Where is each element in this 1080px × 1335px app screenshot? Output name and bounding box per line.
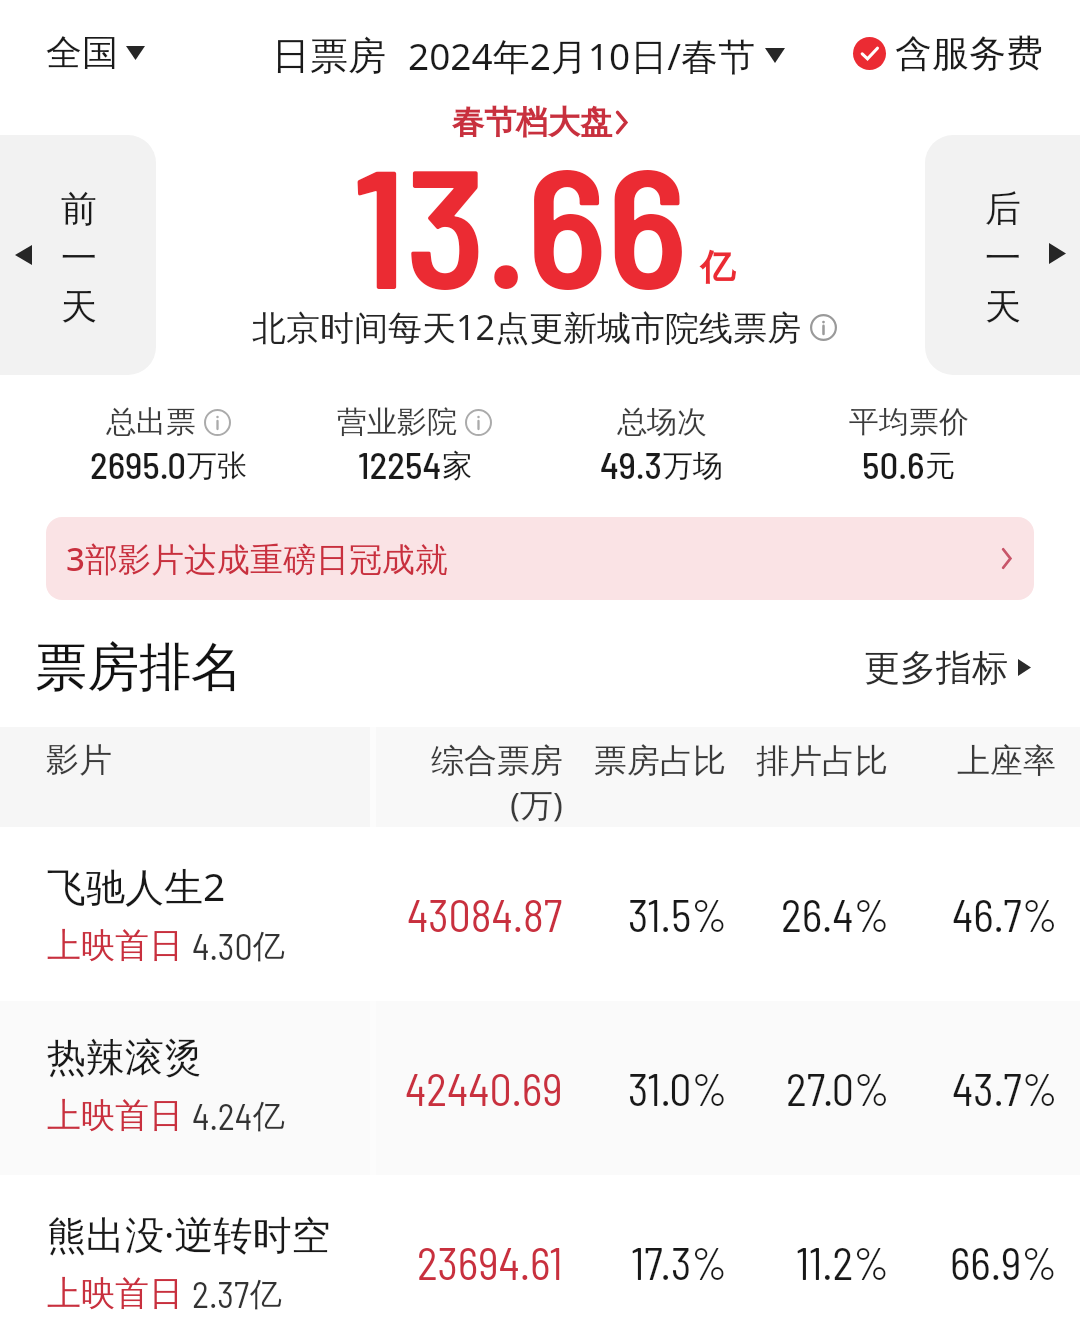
staticText: 4.24	[192, 1094, 253, 1137]
button[interactable]: 3部影片达成重磅日冠成就	[46, 517, 1034, 600]
staticText: 43084.87	[407, 888, 563, 941]
staticText: 42440.69	[405, 1062, 563, 1115]
other: Next day	[1049, 243, 1066, 264]
staticText: 13.66	[353, 121, 688, 323]
button[interactable]: 含服务费	[853, 30, 1043, 77]
staticText: 66.9%	[950, 1236, 1058, 1289]
staticText: (万)	[510, 782, 563, 827]
staticText: 上映首日	[47, 1272, 183, 1315]
button[interactable]	[925, 135, 1080, 375]
staticText: 北京时间每天12点更新城市院线票房	[252, 304, 801, 350]
staticText: 前	[61, 186, 97, 231]
staticText: 一	[985, 235, 1021, 280]
staticText: 飞驰人生2	[47, 859, 226, 912]
staticText: 31.0%	[628, 1062, 728, 1115]
staticText: 43.7%	[952, 1062, 1058, 1115]
staticText: 12254	[358, 442, 442, 486]
staticText: 热辣滚烫	[47, 1033, 203, 1082]
staticText: 46.7%	[952, 888, 1058, 941]
staticText: 日票房	[272, 32, 386, 80]
button[interactable]: 春节档大盘	[452, 102, 629, 142]
staticText: 上座率	[957, 740, 1056, 782]
staticText: 营业影院	[337, 403, 457, 441]
staticText: 春节档大盘	[452, 102, 612, 142]
staticText: 总场次	[617, 403, 707, 441]
staticText: 万张	[187, 447, 247, 485]
staticText: 家	[442, 447, 472, 485]
staticText: 3部影片达成重磅日冠成就	[66, 536, 448, 581]
staticText: 一	[61, 235, 97, 280]
staticText: 平均票价	[849, 403, 969, 441]
staticText: 4.30	[192, 924, 253, 967]
staticText: 元	[925, 447, 955, 485]
button[interactable]: 熊出没·逆转时空	[0, 1175, 1080, 1335]
staticText: 49.3	[600, 442, 663, 486]
staticText: 50.6	[862, 442, 925, 486]
button[interactable]: 日票房	[272, 30, 785, 81]
staticText: 含服务费	[895, 30, 1043, 77]
button[interactable]: 全国	[46, 30, 145, 75]
staticText: 亿	[253, 926, 285, 966]
staticText: 票房占比	[594, 740, 726, 782]
button[interactable]: 热辣滚烫	[0, 1001, 1080, 1175]
staticText: 熊出没·逆转时空	[47, 1207, 331, 1260]
staticText: 亿	[700, 245, 735, 289]
button[interactable]: 飞驰人生2	[0, 827, 1080, 1001]
staticText: 上映首日	[47, 1094, 183, 1137]
staticText: 2.37	[192, 1272, 250, 1315]
staticText: 亿	[253, 1096, 285, 1136]
staticText: 综合票房	[431, 740, 563, 782]
staticText: 全国	[46, 30, 118, 75]
staticText: 总出票	[106, 403, 196, 441]
staticText: 亿	[250, 1274, 282, 1314]
button[interactable]: 更多指标	[864, 645, 1031, 690]
staticText: 23694.61	[417, 1236, 563, 1289]
staticText: 更多指标	[864, 645, 1008, 690]
staticText: 影片	[46, 739, 112, 781]
staticText: 排片占比	[756, 740, 888, 782]
staticText: 27.0%	[786, 1062, 890, 1115]
staticText: 天	[985, 284, 1021, 329]
staticText: 31.5%	[628, 888, 728, 941]
other: Previous day	[15, 245, 32, 265]
staticText: 11.2%	[796, 1236, 890, 1289]
staticText: 票房排名	[35, 635, 243, 701]
staticText: 2695.0	[90, 442, 187, 486]
staticText: 上映首日	[47, 924, 183, 967]
staticText: 万场	[663, 447, 723, 485]
staticText: 后	[985, 186, 1021, 231]
staticText: 26.4%	[781, 888, 890, 941]
button[interactable]	[0, 135, 156, 375]
staticText: 天	[61, 284, 97, 329]
staticText: 17.3%	[631, 1236, 728, 1289]
staticText: 2024年2月10日/春节	[408, 30, 755, 81]
